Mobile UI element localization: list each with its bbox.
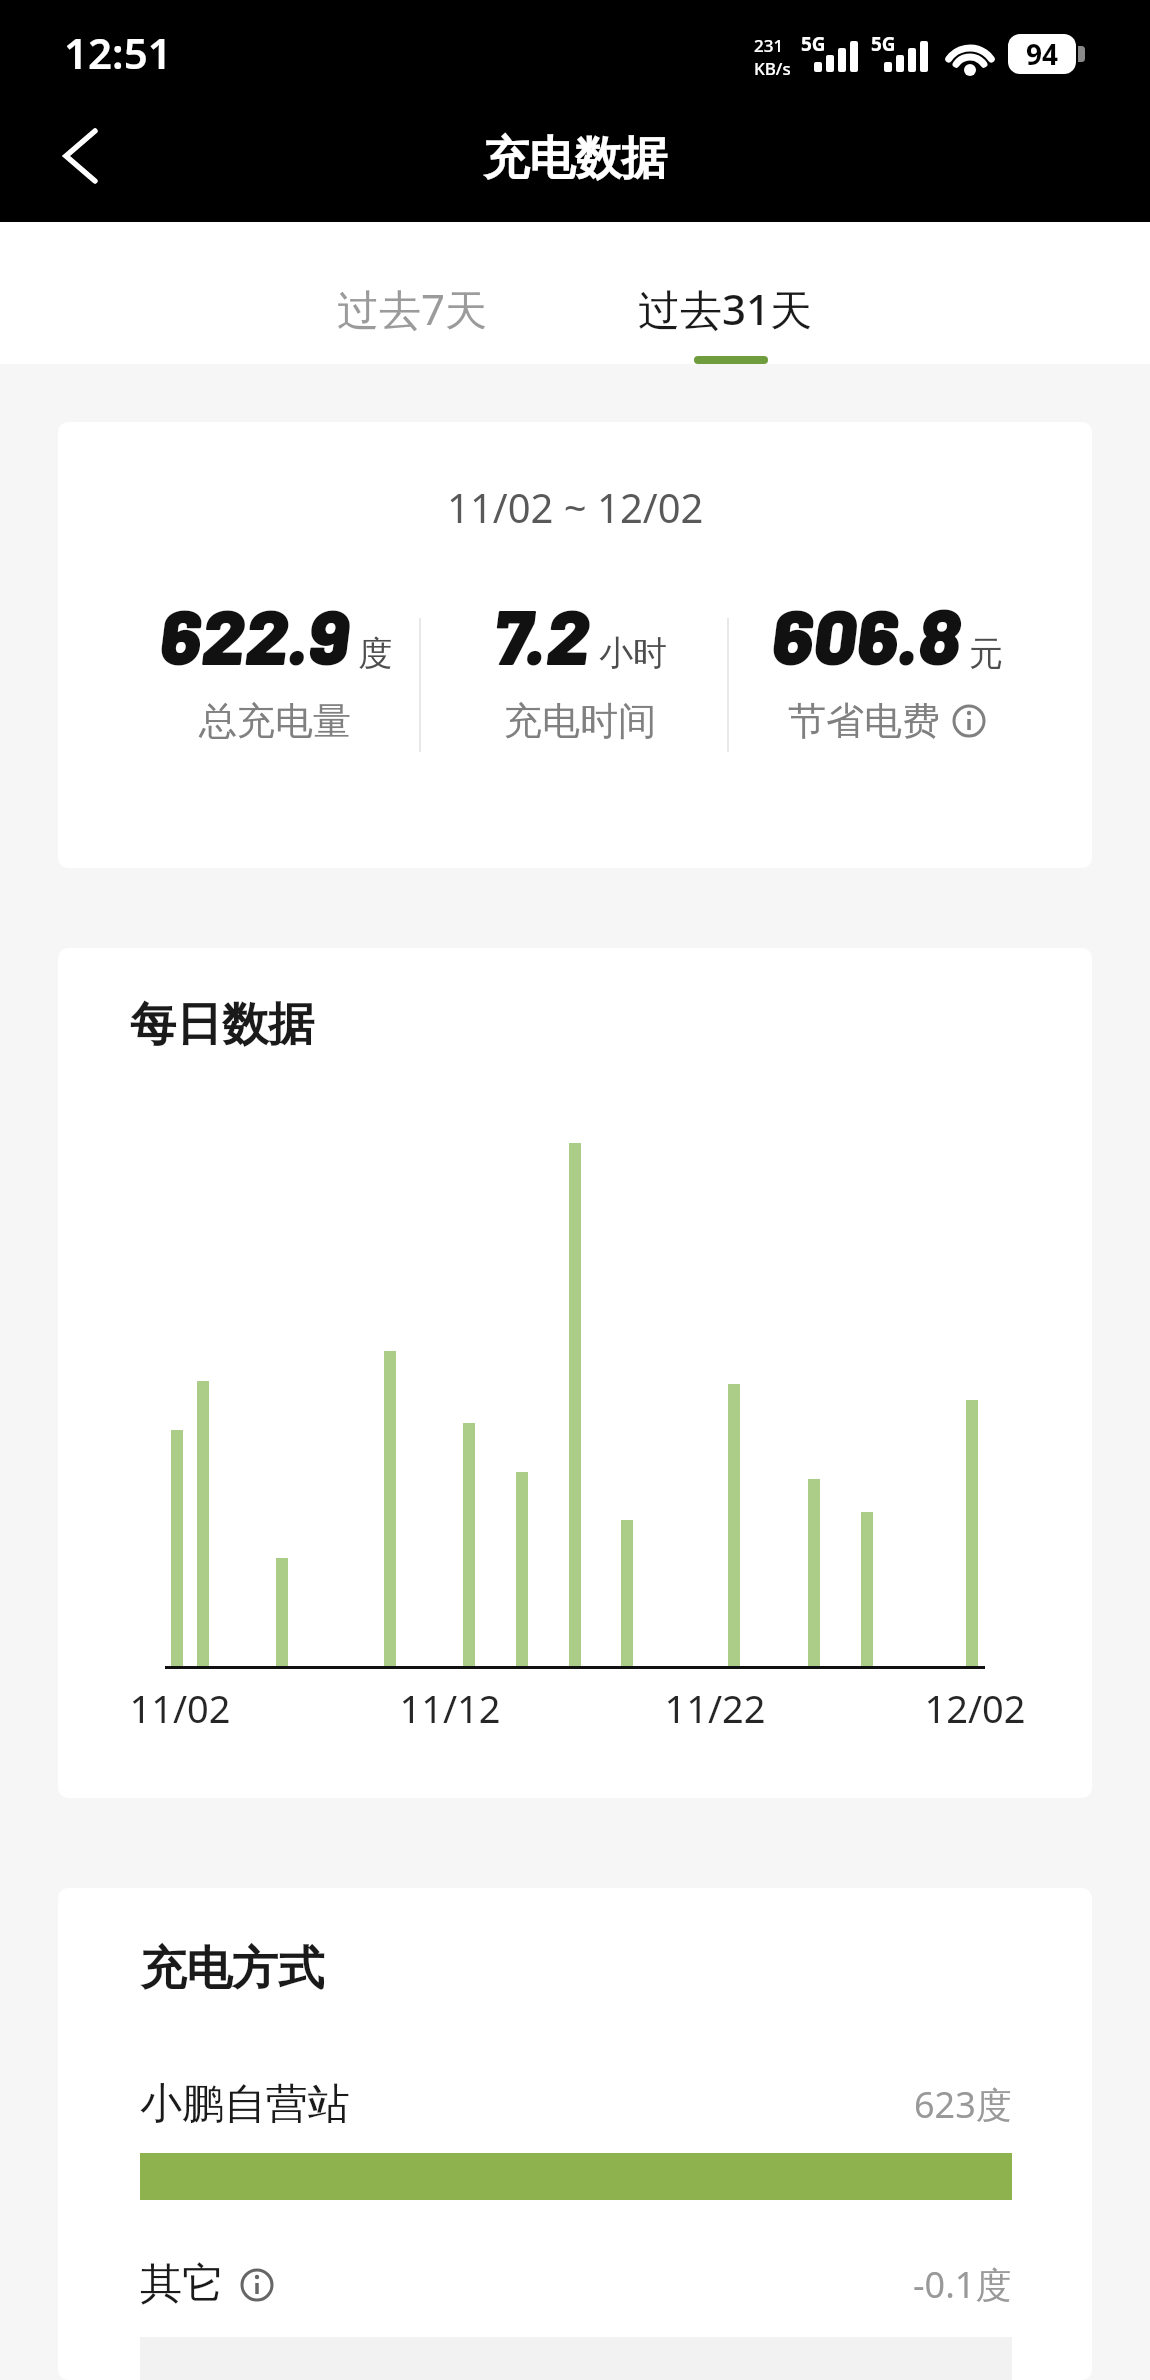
- staticText: 94: [1026, 35, 1059, 73]
- staticText: 606.8: [771, 587, 960, 681]
- staticText: 231: [754, 34, 784, 57]
- staticText: 节省电费: [788, 697, 940, 745]
- staticText: 过去31天: [638, 280, 813, 337]
- staticText: 每日数据: [130, 996, 314, 1054]
- staticText: 小时: [599, 632, 667, 675]
- staticText: 623度: [914, 2080, 1012, 2129]
- button[interactable]: 充电时间: [504, 697, 656, 745]
- staticText: 过去7天: [337, 280, 488, 337]
- staticText: 7.2: [493, 587, 590, 681]
- button[interactable]: [36, 112, 124, 200]
- staticText: 充电数据: [483, 130, 667, 188]
- button[interactable]: 其它: [140, 2258, 1012, 2311]
- staticText: 充电方式: [140, 1940, 324, 1998]
- staticText: 622.9: [159, 587, 349, 681]
- staticText: -0.1度: [913, 2260, 1012, 2309]
- button[interactable]: 小鹏自营站: [140, 2078, 1012, 2131]
- staticText: 总充电量: [199, 697, 351, 745]
- staticText: 充电时间: [504, 697, 656, 745]
- staticText: KB/s: [754, 57, 791, 80]
- button[interactable]: 过去7天: [337, 280, 488, 337]
- staticText: 11/22: [645, 1682, 785, 1734]
- staticText: 11/02: [110, 1682, 250, 1734]
- staticText: 11/02 ~ 12/02: [447, 480, 704, 534]
- staticText: 12/02: [905, 1682, 1045, 1734]
- staticText: 元: [969, 632, 1003, 675]
- staticText: 小鹏自营站: [140, 2078, 350, 2131]
- staticText: 度: [358, 632, 392, 675]
- button[interactable]: 过去31天: [638, 280, 813, 337]
- staticText: 5G: [801, 31, 826, 57]
- staticText: 11/12: [380, 1682, 520, 1734]
- button[interactable]: 总充电量: [199, 697, 351, 745]
- staticText: 12:51: [64, 24, 172, 81]
- staticText: 5G: [871, 31, 896, 57]
- staticText: 其它: [140, 2258, 224, 2311]
- button[interactable]: 节省电费: [788, 697, 986, 745]
